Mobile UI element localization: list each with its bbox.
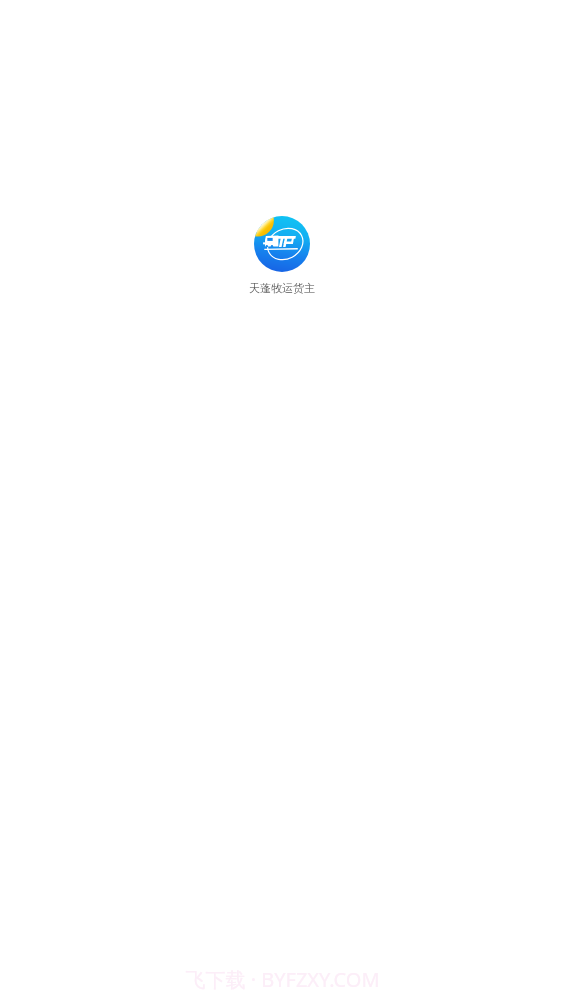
staticText: 天蓬牧运货主 [249, 281, 315, 295]
staticText: 飞下载 · BYFZXY.COM [185, 966, 380, 993]
